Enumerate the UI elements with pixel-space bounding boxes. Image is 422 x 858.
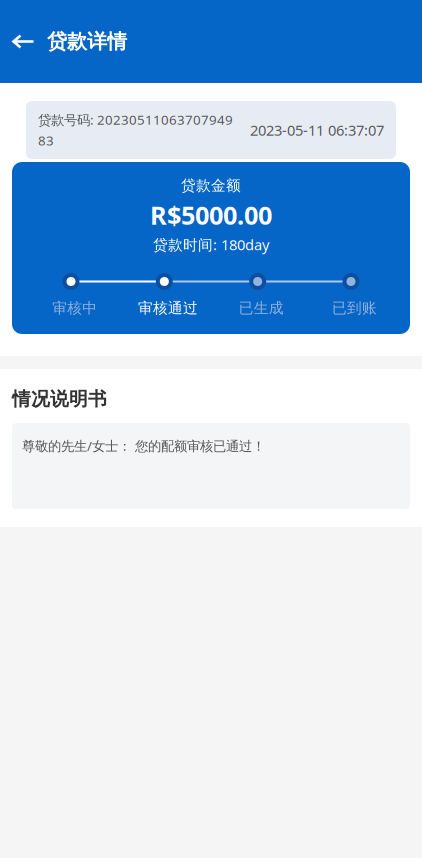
staticText: 83 xyxy=(38,131,54,149)
staticText: 审核通过 xyxy=(138,299,198,317)
staticText: 情况说明书 xyxy=(12,387,107,410)
staticText: 贷款号码: 20230511063707949 xyxy=(38,111,233,128)
staticText: 已生成 xyxy=(239,299,284,317)
staticText: 尊敬的先生/女士： 您的配额审核已通过！ xyxy=(22,437,265,455)
button[interactable]: Back xyxy=(12,19,47,63)
staticText: 贷款时间: 180day xyxy=(153,235,269,254)
staticText: 已到账 xyxy=(332,299,377,317)
staticText: 贷款详情 xyxy=(47,29,127,54)
staticText: R$5000.00 xyxy=(150,198,272,232)
staticText: 贷款金额 xyxy=(181,176,241,194)
staticText: 审核中 xyxy=(52,299,97,317)
staticText: 2023-05-11 06:37:07 xyxy=(250,120,384,140)
